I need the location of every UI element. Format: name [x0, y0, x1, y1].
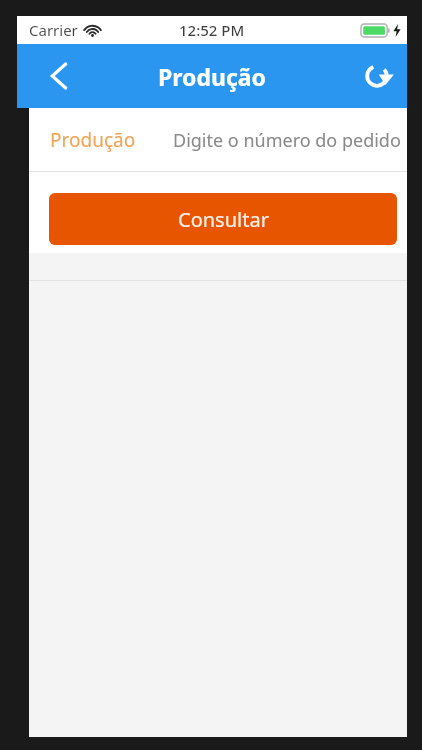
staticText: Produção — [50, 127, 136, 153]
staticText: Digite o número do pedido — [173, 128, 401, 153]
staticText: Consultar — [178, 206, 269, 233]
button[interactable]: Back — [37, 54, 81, 98]
button[interactable]: Consultar — [49, 193, 397, 245]
button[interactable]: Produção — [29, 108, 407, 171]
button[interactable]: Refresh — [355, 54, 399, 98]
staticText: Produção — [158, 61, 266, 92]
staticText: 12:52 PM — [179, 20, 245, 40]
staticText: Carrier — [29, 20, 78, 40]
